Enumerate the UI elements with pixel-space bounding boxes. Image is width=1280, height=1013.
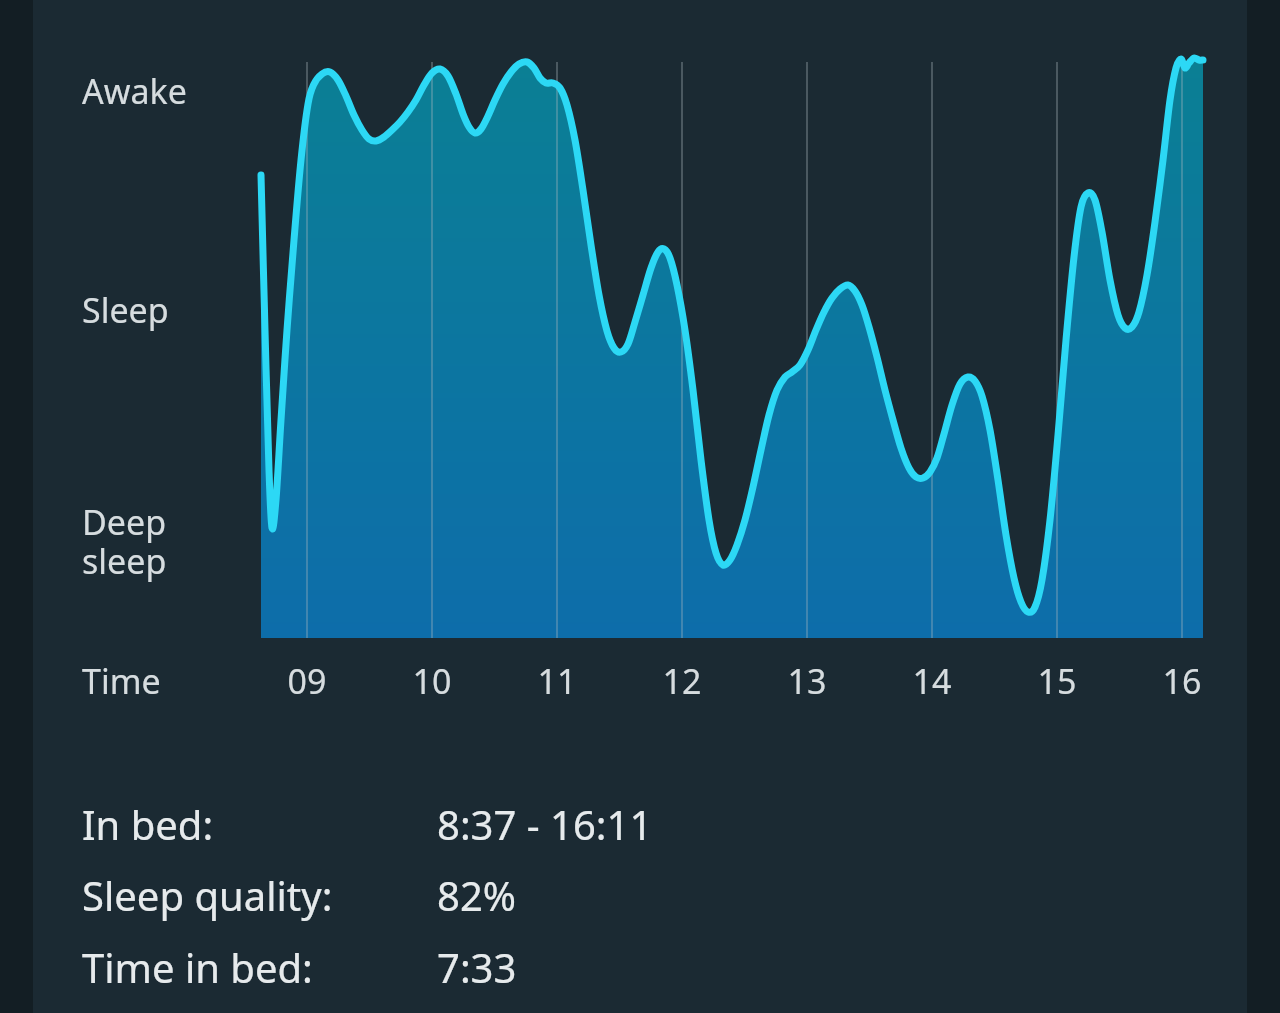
button[interactable]: Sleep graph detail (0, 0, 1280, 1013)
